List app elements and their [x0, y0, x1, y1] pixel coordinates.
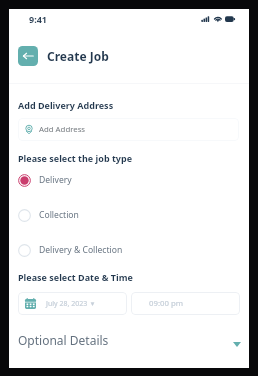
button[interactable]: Delivery	[18, 169, 239, 191]
staticText: 9:41	[29, 13, 47, 25]
button[interactable]: Add Address	[18, 118, 239, 141]
staticText: Delivery	[39, 174, 72, 186]
staticText: Create Job	[47, 48, 109, 64]
staticText: Please select Date & Time	[18, 271, 133, 283]
button[interactable]: Delivery & Collection	[18, 239, 239, 261]
button[interactable]: July 28, 2023 ▾	[18, 292, 127, 315]
staticText: Add Address	[39, 124, 86, 135]
button[interactable]: 09:00 pm	[131, 292, 240, 315]
staticText: Delivery & Collection	[39, 244, 123, 256]
staticText: Collection	[39, 209, 79, 221]
button[interactable]: Optional Details	[18, 327, 249, 357]
staticText: Please select the job type	[18, 152, 133, 164]
button[interactable]: Collection	[18, 204, 239, 226]
staticText: Add Delivery Address	[18, 99, 114, 111]
staticText: Optional Details	[18, 332, 109, 348]
staticText: 09:00 pm	[149, 298, 184, 309]
staticText: July 28, 2023 ▾	[46, 299, 95, 309]
button[interactable]: Back	[18, 46, 38, 66]
